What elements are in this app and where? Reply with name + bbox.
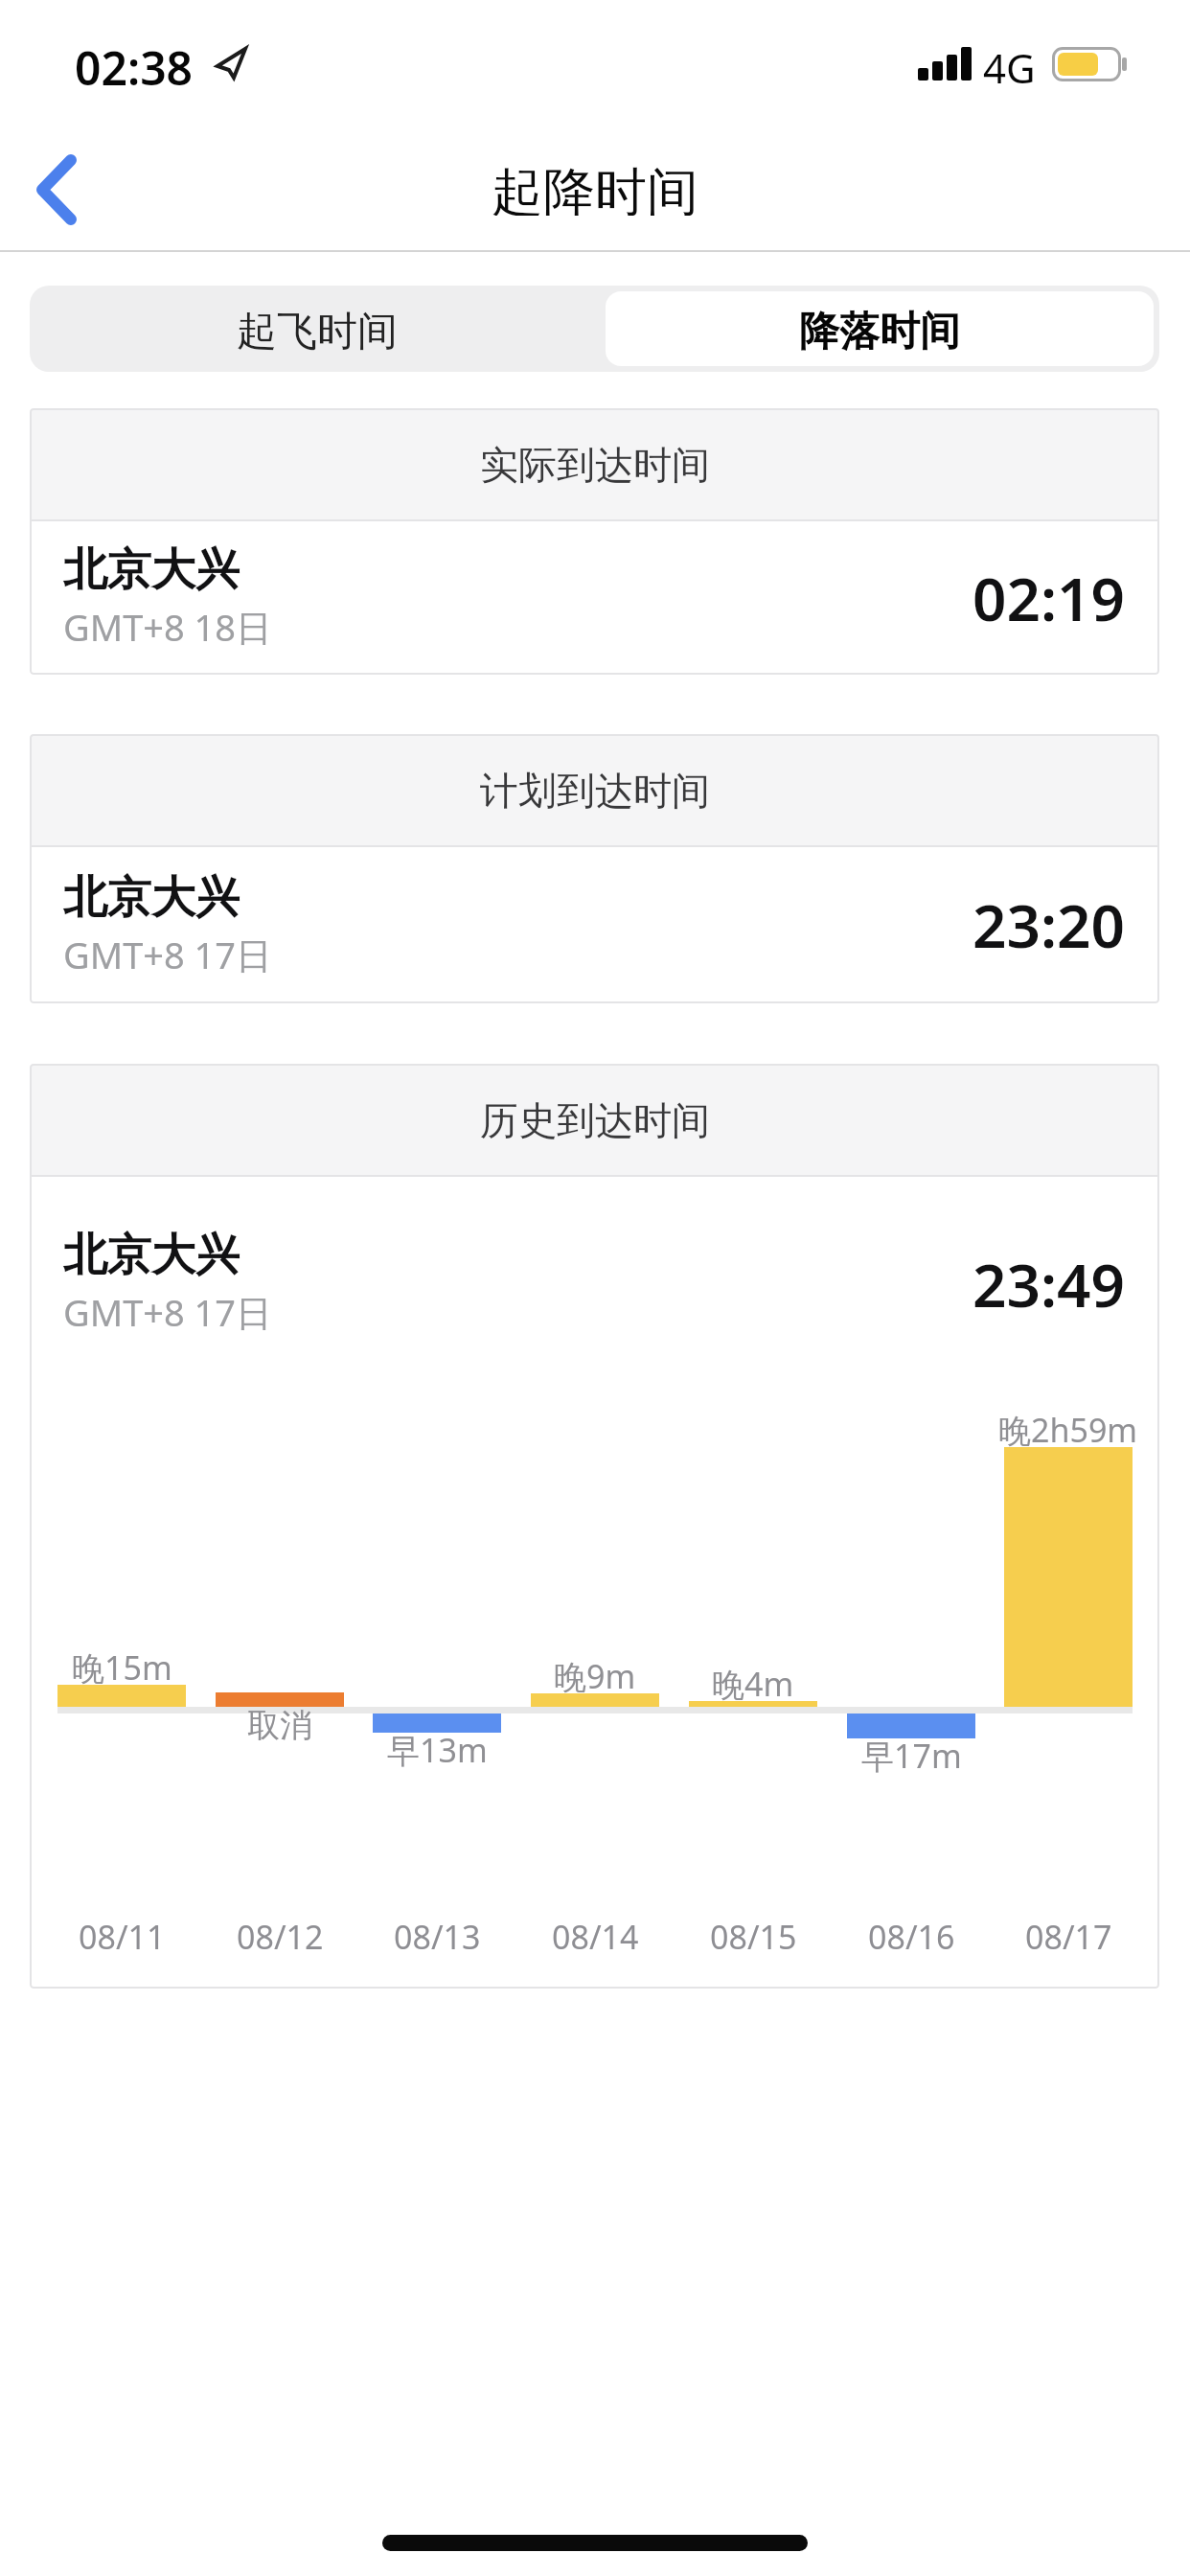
button[interactable] [606,291,1154,366]
staticText: 4G [983,40,1036,86]
staticText: 北京大兴 [63,1228,240,1283]
staticText: 北京大兴 [63,542,240,598]
staticText: 起飞时间 [237,307,398,351]
staticText: 08/15 [710,1915,797,1957]
staticText: 08/11 [79,1915,166,1957]
staticText: GMT+8 17日 [63,930,273,979]
button[interactable] [17,142,113,238]
staticText: 降落时间 [799,307,960,351]
staticText: 23:20 [973,885,1125,965]
staticText: 晚2h59m [998,1408,1138,1452]
staticText: 08/12 [237,1915,324,1957]
staticText: 历史到达时间 [480,1096,710,1144]
button[interactable] [32,847,1157,1001]
staticText: 晚15m [72,1645,172,1690]
staticText: 早13m [387,1728,488,1772]
staticText: 取消 [247,1705,312,1746]
staticText: GMT+8 18日 [63,602,273,652]
staticText: 早17m [861,1734,962,1778]
staticText: 08/17 [1025,1915,1112,1957]
staticText: 08/14 [552,1915,639,1957]
staticText: 北京大兴 [63,870,240,926]
staticText: 23:49 [973,1244,1125,1324]
button[interactable] [30,286,595,372]
staticText: 实际到达时间 [480,441,710,489]
staticText: 02:38 [75,36,194,90]
staticText: 计划到达时间 [480,767,710,815]
staticText: 08/16 [868,1915,955,1957]
staticText: 08/13 [394,1915,481,1957]
staticText: 晚9m [554,1654,636,1698]
staticText: 02:19 [973,558,1125,638]
button[interactable] [32,521,1157,673]
staticText: 起降时间 [492,160,698,216]
staticText: 晚4m [712,1662,794,1706]
staticText: GMT+8 17日 [63,1287,273,1337]
